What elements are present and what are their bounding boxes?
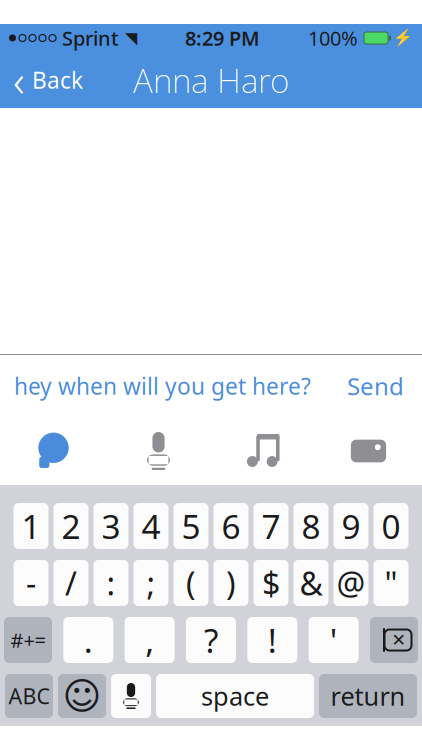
- button[interactable]: Message: [1, 417, 106, 485]
- staticText: /: [65, 562, 77, 604]
- button[interactable]: Tag: [316, 417, 421, 485]
- button[interactable]: ?: [186, 617, 236, 663]
- button[interactable]: ;: [133, 560, 168, 606]
- button[interactable]: return: [319, 674, 417, 718]
- staticText: (: [186, 562, 196, 604]
- button[interactable]: (: [173, 560, 208, 606]
- button[interactable]: Send: [329, 354, 422, 418]
- button[interactable]: hey when will you get here?: [0, 355, 311, 417]
- staticText: return: [330, 679, 405, 713]
- staticText: ": [384, 562, 397, 604]
- staticText: @: [336, 562, 365, 604]
- button[interactable]: ‹: [0, 52, 95, 108]
- staticText: -: [26, 562, 36, 604]
- button[interactable]: ": [373, 560, 408, 606]
- button[interactable]: ': [309, 617, 359, 663]
- staticText: Sprint: [62, 25, 119, 51]
- button[interactable]: 3: [93, 503, 128, 549]
- staticText: 0: [381, 504, 400, 548]
- staticText: ,: [145, 618, 154, 662]
- staticText: 8: [301, 504, 320, 548]
- staticText: ABC: [8, 682, 49, 710]
- staticText: 1: [21, 504, 40, 548]
- staticText: ': [330, 618, 338, 662]
- staticText: 2: [61, 504, 80, 548]
- staticText: ✕: [391, 630, 406, 650]
- button[interactable]: @: [333, 560, 368, 606]
- button[interactable]: .: [63, 617, 113, 663]
- staticText: 7: [261, 504, 280, 548]
- button[interactable]: #+=: [4, 617, 52, 663]
- staticText: ): [226, 562, 236, 604]
- button[interactable]: space: [156, 674, 314, 718]
- staticText: Send: [347, 370, 404, 402]
- staticText: ☺: [62, 675, 101, 717]
- button[interactable]: &: [293, 560, 328, 606]
- staticText: ?: [204, 618, 218, 662]
- button[interactable]: 2: [53, 503, 88, 549]
- button[interactable]: Delete: [370, 617, 418, 663]
- staticText: Anna Haro: [133, 58, 289, 102]
- button[interactable]: Dictation: [111, 674, 151, 718]
- button[interactable]: !: [247, 617, 297, 663]
- button[interactable]: 1: [13, 503, 48, 549]
- staticText: space: [201, 679, 269, 713]
- button[interactable]: 5: [173, 503, 208, 549]
- staticText: #+=: [10, 627, 45, 653]
- staticText: ◥: [125, 29, 137, 47]
- button[interactable]: 4: [133, 503, 168, 549]
- staticText: ⚡: [393, 29, 413, 47]
- staticText: 100%: [308, 25, 358, 51]
- button[interactable]: Music: [211, 417, 316, 485]
- staticText: ‹: [13, 51, 25, 109]
- staticText: Back: [32, 65, 83, 95]
- button[interactable]: 6: [213, 503, 248, 549]
- button[interactable]: Record audio: [106, 417, 211, 485]
- button[interactable]: 8: [293, 503, 328, 549]
- button[interactable]: -: [13, 560, 48, 606]
- button[interactable]: Emoji: [58, 674, 106, 718]
- staticText: 8:29 PM: [185, 25, 260, 51]
- staticText: :: [106, 562, 115, 604]
- staticText: hey when will you get here?: [14, 371, 311, 401]
- button[interactable]: :: [93, 560, 128, 606]
- button[interactable]: ,: [125, 617, 175, 663]
- staticText: $: [262, 562, 280, 604]
- staticText: ;: [146, 562, 155, 604]
- staticText: !: [268, 618, 277, 662]
- button[interactable]: 9: [333, 503, 368, 549]
- staticText: &: [299, 562, 322, 604]
- button[interactable]: $: [253, 560, 288, 606]
- button[interactable]: ABC: [5, 674, 53, 718]
- staticText: 4: [141, 504, 160, 548]
- staticText: 9: [341, 504, 360, 548]
- button[interactable]: 0: [373, 503, 408, 549]
- staticText: 5: [181, 504, 200, 548]
- staticText: 6: [221, 504, 240, 548]
- staticText: 3: [101, 504, 120, 548]
- button[interactable]: ): [213, 560, 248, 606]
- staticText: .: [84, 618, 93, 662]
- button[interactable]: /: [53, 560, 88, 606]
- button[interactable]: 7: [253, 503, 288, 549]
